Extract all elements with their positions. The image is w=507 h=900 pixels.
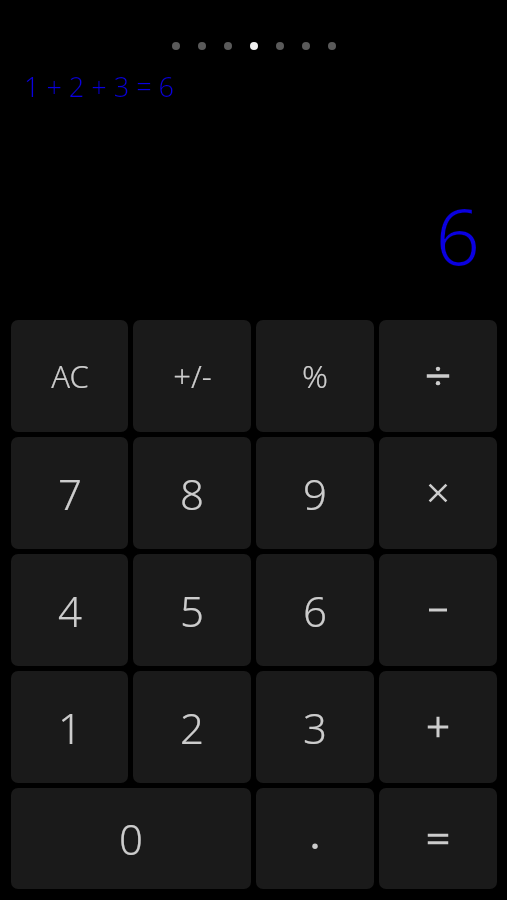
button[interactable]: 7 [11, 437, 128, 549]
button[interactable]: Add [379, 671, 497, 783]
button[interactable]: 0 [11, 788, 251, 889]
staticText: 1 [58, 699, 82, 756]
button[interactable]: 4 [11, 554, 128, 666]
staticText: +/- [173, 355, 212, 397]
staticText: 8 [180, 465, 204, 522]
button[interactable]: Multiply [379, 437, 497, 549]
button[interactable]: +/- [133, 320, 251, 432]
button[interactable]: % [256, 320, 374, 432]
staticText: 1 + 2 + 3 = 6 [24, 68, 175, 105]
staticText: 7 [58, 465, 82, 522]
staticText: 0 [119, 810, 143, 867]
button[interactable]: 5 [133, 554, 251, 666]
button[interactable]: Subtract [379, 554, 497, 666]
staticText: 4 [58, 582, 82, 639]
button[interactable]: 6 [256, 554, 374, 666]
staticText: % [302, 354, 328, 398]
button[interactable]: Equals [379, 788, 497, 889]
button[interactable]: 3 [256, 671, 374, 783]
staticText: 3 [303, 699, 327, 756]
staticText: 9 [303, 465, 327, 522]
staticText: AC [51, 355, 89, 397]
button[interactable]: AC [11, 320, 128, 432]
button[interactable]: 9 [256, 437, 374, 549]
staticText: 6 [303, 582, 327, 639]
button[interactable]: 1 [11, 671, 128, 783]
staticText: 5 [180, 582, 204, 639]
staticText: 6 [435, 182, 480, 288]
staticText: 2 [180, 699, 204, 756]
button[interactable]: Divide [379, 320, 497, 432]
button[interactable]: Decimal point [256, 788, 374, 889]
button[interactable]: 2 [133, 671, 251, 783]
button[interactable]: 8 [133, 437, 251, 549]
